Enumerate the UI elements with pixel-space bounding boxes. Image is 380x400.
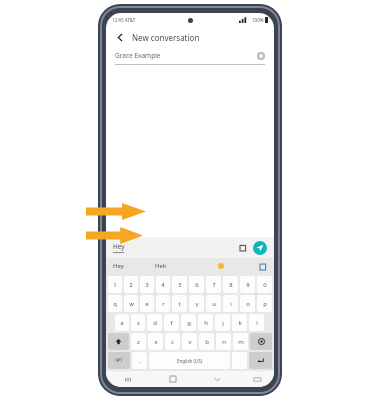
button[interactable]: , [132, 352, 147, 369]
staticText: 2 [129, 281, 133, 289]
button[interactable]: English (US) [149, 352, 230, 369]
button[interactable]: u [206, 295, 221, 312]
staticText: b [205, 338, 209, 346]
staticText: e [145, 300, 149, 308]
staticText: 8 [229, 281, 233, 289]
staticText: k [238, 319, 242, 327]
staticText: Heh [155, 262, 167, 270]
button[interactable]: 6 [189, 276, 204, 293]
button[interactable]: v [182, 333, 197, 350]
staticText: 5 [178, 281, 182, 289]
staticText: w [129, 300, 134, 308]
staticText: l [256, 319, 258, 327]
button[interactable]: Heh [155, 262, 201, 270]
staticText: 3 [145, 281, 149, 289]
staticText: 100% [252, 17, 264, 23]
staticText: . [239, 357, 241, 365]
button[interactable]: g [181, 314, 196, 331]
staticText: n [222, 338, 226, 346]
button[interactable]: Add recipient [257, 52, 265, 60]
staticText: d [153, 319, 157, 327]
button[interactable]: q [108, 295, 122, 312]
button[interactable]: n [216, 333, 231, 350]
staticText: m [238, 338, 244, 346]
staticText: Hey [113, 262, 124, 270]
button[interactable]: Send [253, 241, 267, 255]
staticText: c [171, 338, 174, 346]
button[interactable]: 5 [172, 276, 187, 293]
button[interactable]: Delete [250, 333, 272, 350]
button[interactable]: 3 [140, 276, 154, 293]
button[interactable]: !#1 [108, 352, 130, 369]
button[interactable]: Back [106, 27, 274, 47]
button[interactable]: Grace Example [115, 47, 265, 64]
staticText: v [188, 338, 192, 346]
button[interactable]: Hey [113, 262, 155, 270]
button[interactable]: 8 [223, 276, 238, 293]
button[interactable]: j [215, 314, 230, 331]
button[interactable]: k [232, 314, 247, 331]
button[interactable]: 0 [257, 276, 272, 293]
staticText: 4 [161, 281, 165, 289]
button[interactable]: 4 [156, 276, 170, 293]
staticText: y [195, 300, 199, 308]
staticText: , [139, 357, 141, 365]
button[interactable]: 7 [206, 276, 221, 293]
button[interactable]: Keyboard [240, 371, 274, 387]
button[interactable]: b [199, 333, 214, 350]
staticText: 1 [113, 281, 117, 289]
button[interactable]: h [198, 314, 213, 331]
button[interactable]: . [232, 352, 247, 369]
staticText: z [137, 338, 140, 346]
button[interactable]: Attach [238, 242, 249, 253]
staticText: g [187, 319, 191, 327]
staticText: u [212, 300, 216, 308]
button[interactable]: y [189, 295, 204, 312]
button[interactable]: w [124, 295, 138, 312]
staticText: h [204, 319, 208, 327]
staticText: 7 [212, 281, 216, 289]
button[interactable]: Home [150, 371, 195, 387]
button[interactable]: 9 [240, 276, 255, 293]
button[interactable]: i [223, 295, 238, 312]
button[interactable]: p [257, 295, 272, 312]
button[interactable]: Back [114, 31, 126, 43]
staticText: t [178, 300, 181, 308]
staticText: Hey [113, 242, 125, 251]
staticText: j [222, 319, 224, 327]
button[interactable]: s [131, 314, 145, 331]
button[interactable]: x [148, 333, 163, 350]
button[interactable]: d [147, 314, 162, 331]
button[interactable]: Shift [108, 333, 129, 350]
staticText: p [263, 300, 267, 308]
staticText: 9 [246, 281, 250, 289]
button[interactable]: 2 [124, 276, 138, 293]
button[interactable]: f [164, 314, 179, 331]
button[interactable]: a [115, 314, 129, 331]
button[interactable]: Back [195, 371, 240, 387]
button[interactable]: t [172, 295, 187, 312]
staticText: o [246, 300, 250, 308]
button[interactable]: Clipboard [240, 263, 267, 270]
staticText: r [162, 300, 165, 308]
button[interactable]: r [156, 295, 170, 312]
button[interactable]: 1 [108, 276, 122, 293]
staticText: s [137, 319, 140, 327]
staticText: English (US) [177, 358, 202, 364]
staticText: x [154, 338, 158, 346]
button[interactable]: Recents [106, 371, 150, 387]
staticText: q [113, 300, 117, 308]
button[interactable]: m [233, 333, 248, 350]
button[interactable]: Emoji [201, 263, 240, 269]
button[interactable]: l [249, 314, 264, 331]
staticText: 0 [263, 281, 267, 289]
button[interactable]: Enter [249, 352, 272, 369]
button[interactable]: c [165, 333, 180, 350]
button[interactable]: o [240, 295, 255, 312]
button[interactable]: z [131, 333, 146, 350]
staticText: 12:45 AT&T [112, 17, 136, 23]
staticText: f [170, 319, 173, 327]
staticText: a [120, 319, 124, 327]
button[interactable]: e [140, 295, 154, 312]
staticText: 6 [195, 281, 199, 289]
